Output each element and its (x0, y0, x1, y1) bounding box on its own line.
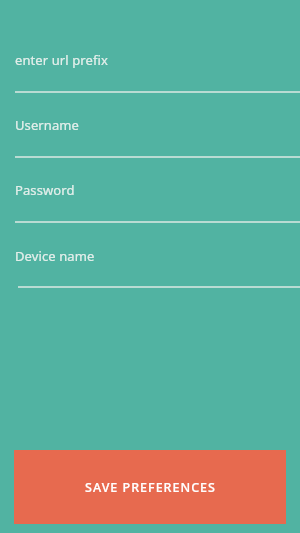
button[interactable]: enter url prefix (15, 51, 285, 69)
button[interactable]: Password (15, 181, 285, 199)
staticText: enter url prefix (15, 51, 109, 69)
button[interactable]: SAVE PREFERENCES (14, 450, 286, 524)
button[interactable]: Username (15, 116, 285, 134)
staticText: SAVE PREFERENCES (85, 479, 216, 496)
staticText: Password (15, 181, 75, 199)
staticText: Device name (15, 247, 95, 265)
staticText: Username (15, 116, 80, 134)
button[interactable]: Device name (15, 247, 285, 265)
